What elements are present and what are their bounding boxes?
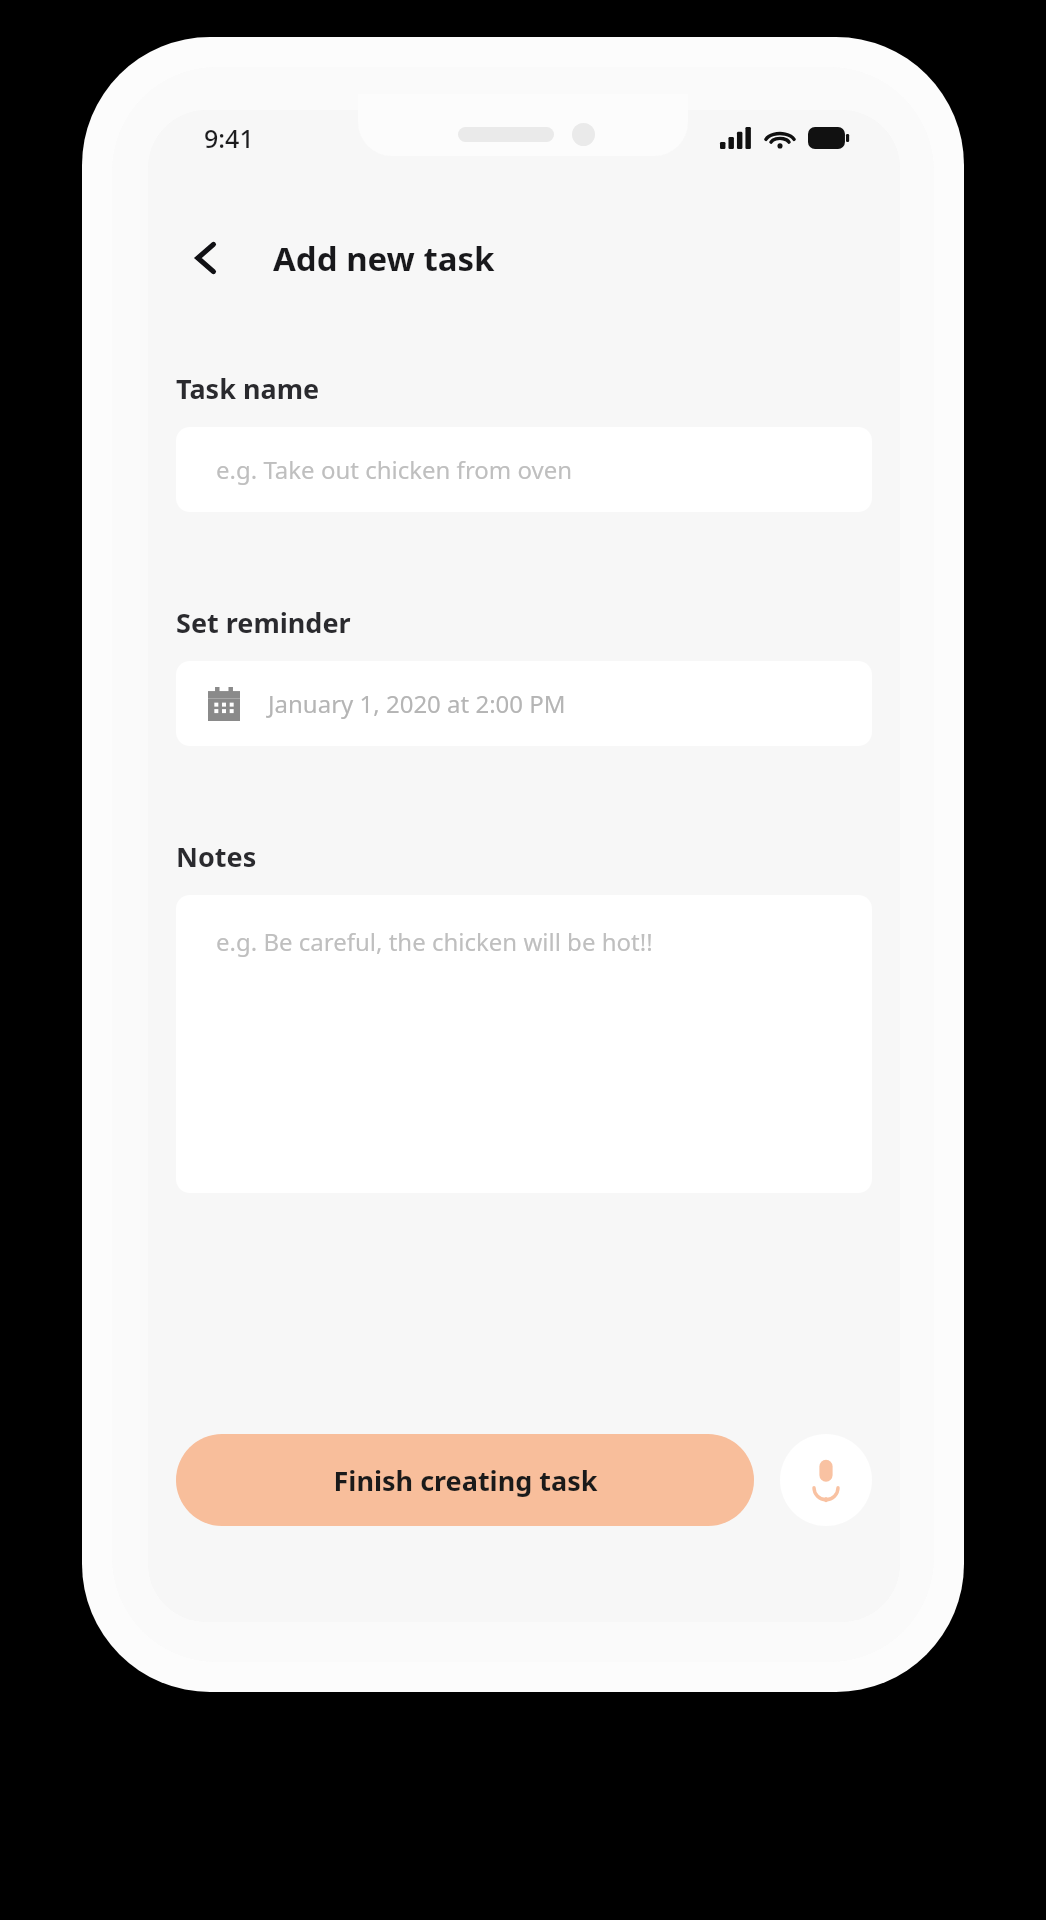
button[interactable]: Finish creating task [176,1434,754,1526]
staticText: e.g. Be careful, the chicken will be hot… [216,925,653,958]
staticText: e.g. Take out chicken from oven [216,453,573,486]
button[interactable]: e.g. Take out chicken from oven [176,427,872,512]
staticText: Set reminder [176,604,351,641]
staticText: Task name [176,370,320,407]
button[interactable]: Voice input [780,1434,872,1526]
staticText: Add new task [273,236,495,281]
button[interactable]: e.g. Be careful, the chicken will be hot… [176,895,872,1193]
button[interactable]: Back [174,226,238,290]
staticText: Notes [176,838,257,875]
staticText: January 1, 2020 at 2:00 PM [268,687,566,720]
staticText: Finish creating task [333,1462,598,1499]
button[interactable]: January 1, 2020 at 2:00 PM [176,661,872,746]
staticText: 9:41 [204,121,254,155]
